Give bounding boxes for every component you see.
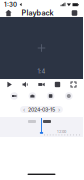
staticText: 12:00: [57, 129, 66, 134]
staticText: ‹: [23, 106, 25, 113]
button[interactable]: Full screen: [67, 79, 80, 90]
button[interactable]: Stop: [51, 79, 64, 90]
button[interactable]: Record clip: [35, 79, 48, 90]
staticText: 1:30: [4, 1, 17, 8]
staticText: 1:4: [37, 68, 45, 75]
button[interactable]: Choose date: [20, 106, 63, 113]
button[interactable]: Play: [3, 79, 16, 90]
button[interactable]: Stop recording: [44, 90, 58, 102]
staticText: Playback: [21, 9, 53, 17]
button[interactable]: Home: [3, 9, 14, 17]
button[interactable]: Devices: [69, 9, 80, 17]
button[interactable]: Video clip: [7, 90, 21, 102]
button[interactable]: Mute: [19, 79, 32, 90]
staticText: 2024-03-15: [28, 106, 55, 113]
staticText: ›: [58, 106, 60, 113]
button[interactable]: Talk: [62, 90, 76, 102]
button[interactable]: Snapshot: [25, 90, 39, 102]
